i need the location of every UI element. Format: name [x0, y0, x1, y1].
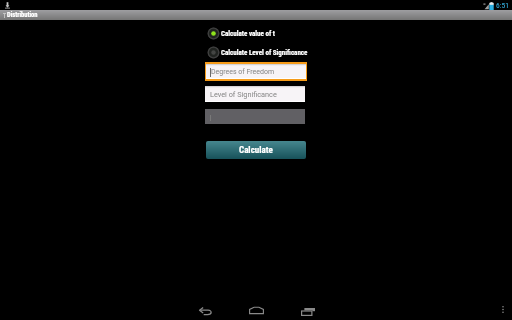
staticText: Calculate Level of Significance	[221, 49, 308, 57]
staticText: Level of Significance	[210, 90, 277, 99]
staticText: Calculate	[239, 145, 273, 156]
button[interactable]: Degrees of Freedom	[206, 64, 306, 79]
button[interactable]: Home	[246, 302, 266, 318]
button[interactable]: Level of Significance	[205, 86, 305, 102]
staticText: 6:51	[496, 1, 509, 10]
staticText: Degrees of Freedom	[211, 68, 275, 76]
staticText: Distribution	[7, 11, 38, 19]
button[interactable]: Back	[194, 303, 216, 319]
staticText: Calculate value of t	[221, 30, 276, 38]
button[interactable]: Calculate Level of Significance	[207, 46, 308, 59]
button[interactable]: Calculate value of t	[207, 27, 276, 40]
button[interactable]: More options	[496, 302, 509, 316]
button[interactable]: Recent apps	[299, 303, 317, 320]
button[interactable]: Calculate	[206, 141, 306, 159]
